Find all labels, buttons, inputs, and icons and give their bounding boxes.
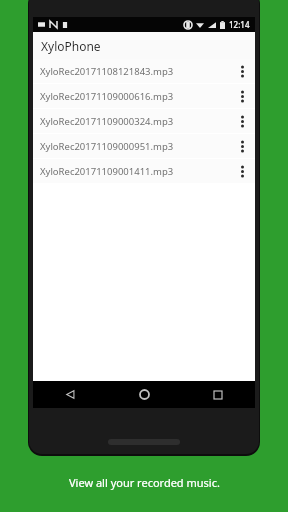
button[interactable]: XyloRec20171109001411.mp3 bbox=[33, 159, 255, 183]
button[interactable]: Recent apps bbox=[181, 381, 255, 408]
staticText: XyloRec20171108121843.mp3 bbox=[40, 65, 174, 78]
button[interactable]: More options bbox=[235, 159, 249, 183]
staticText: 12:14 bbox=[229, 19, 250, 30]
staticText: View all your recorded music. bbox=[69, 475, 220, 490]
button[interactable]: More options bbox=[235, 84, 249, 108]
button[interactable]: More options bbox=[235, 59, 249, 83]
button[interactable]: More options bbox=[235, 134, 249, 158]
button[interactable]: XyloRec20171108121843.mp3 bbox=[33, 59, 255, 83]
staticText: XyloRec20171109001411.mp3 bbox=[40, 165, 174, 178]
button[interactable]: XyloRec20171109000951.mp3 bbox=[33, 134, 255, 158]
staticText: XyloPhone bbox=[41, 38, 101, 54]
button[interactable]: More options bbox=[235, 109, 249, 133]
staticText: XyloRec20171109000951.mp3 bbox=[40, 140, 174, 153]
staticText: XyloRec20171109000324.mp3 bbox=[40, 115, 174, 128]
button[interactable]: Home bbox=[107, 381, 181, 408]
staticText: XyloRec20171109000616.mp3 bbox=[40, 90, 174, 103]
button[interactable]: XyloRec20171109000616.mp3 bbox=[33, 84, 255, 108]
button[interactable]: Back bbox=[33, 381, 107, 408]
button[interactable]: XyloRec20171109000324.mp3 bbox=[33, 109, 255, 133]
